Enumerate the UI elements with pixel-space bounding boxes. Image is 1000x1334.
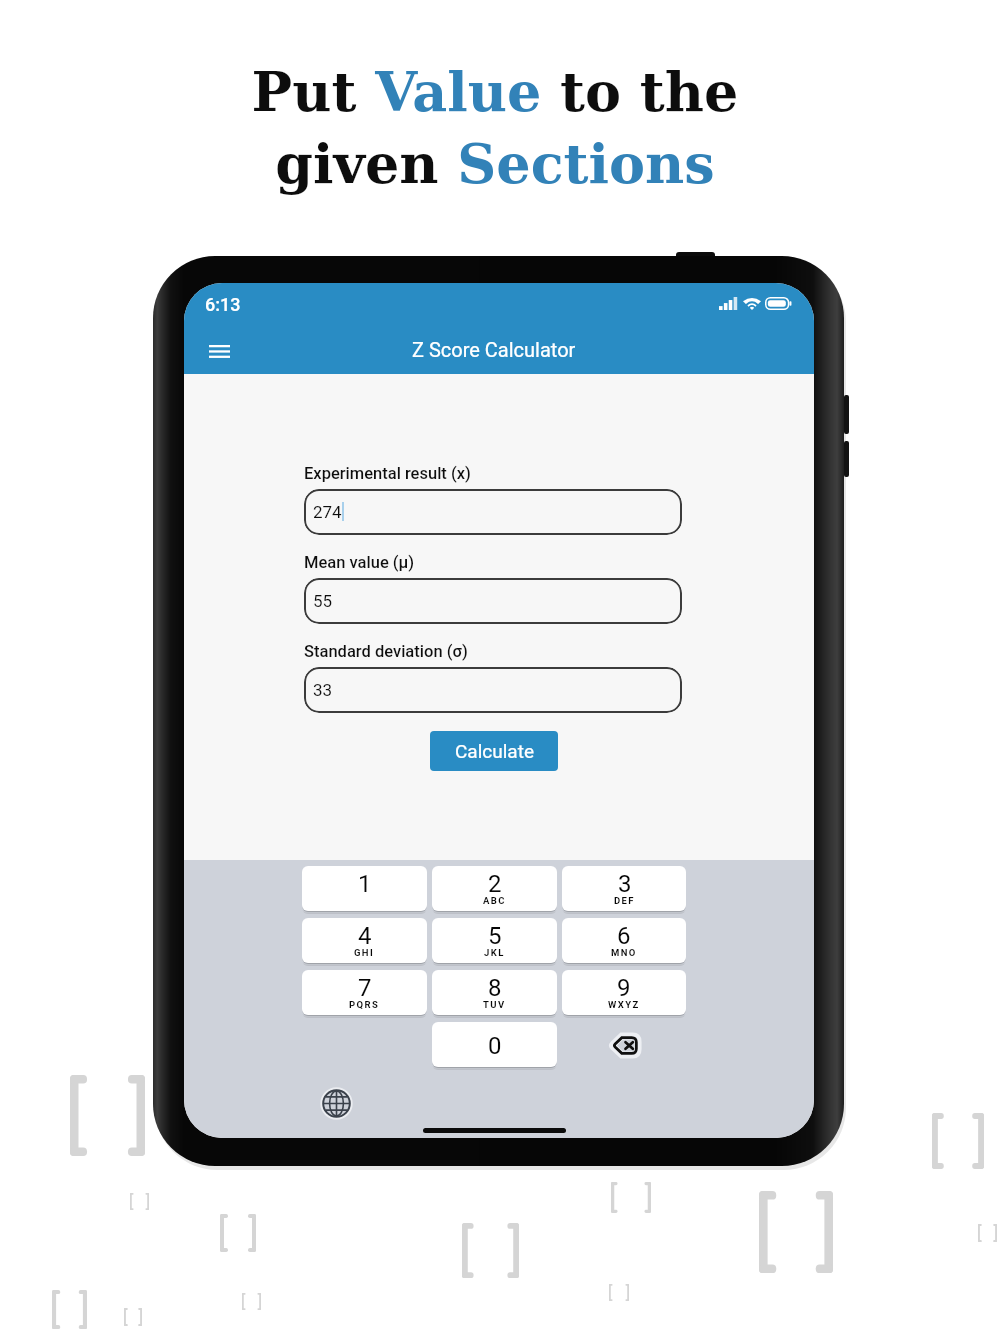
button[interactable]: 4 xyxy=(302,918,427,963)
button[interactable]: 9 xyxy=(562,970,686,1015)
staticText: Standard deviation (σ) xyxy=(304,642,468,661)
button[interactable]: 0 xyxy=(432,1022,557,1067)
staticText: WXYZ xyxy=(608,999,640,1010)
staticText: Calculate xyxy=(455,740,534,762)
staticText: 8 xyxy=(488,974,502,1002)
button[interactable]: Change keyboard language xyxy=(319,1086,353,1120)
staticText: JKL xyxy=(484,947,505,958)
button[interactable]: 8 xyxy=(432,970,557,1015)
staticText: 4 xyxy=(358,922,372,950)
staticText: 6 xyxy=(617,922,631,950)
button[interactable]: 7 xyxy=(302,970,427,1015)
staticText: 9 xyxy=(617,974,631,1002)
button[interactable]: 2 xyxy=(432,866,557,911)
staticText: MNO xyxy=(611,947,637,958)
staticText: 2 xyxy=(488,870,502,898)
button[interactable]: Backspace xyxy=(602,1028,648,1062)
button[interactable]: Open navigation menu xyxy=(200,335,238,367)
staticText: 55 xyxy=(313,591,333,611)
staticText: 7 xyxy=(358,974,372,1002)
staticText: ABC xyxy=(483,895,506,906)
staticText: DEF xyxy=(614,895,635,906)
staticText: 1 xyxy=(358,870,372,898)
staticText: 5 xyxy=(488,922,502,950)
staticText: Mean value (μ) xyxy=(304,553,415,572)
staticText: Put Value to the given Sections xyxy=(0,60,995,195)
staticText: Experimental result (x) xyxy=(304,464,471,483)
button[interactable]: 33 xyxy=(304,667,682,713)
button[interactable]: 6 xyxy=(562,918,686,963)
button[interactable]: 1 xyxy=(302,866,427,911)
staticText: 0 xyxy=(488,1032,502,1060)
staticText: 274 xyxy=(313,502,342,522)
staticText: GHI xyxy=(354,947,375,958)
button[interactable]: 55 xyxy=(304,578,682,624)
button[interactable]: 3 xyxy=(562,866,686,911)
button[interactable]: Calculate xyxy=(430,731,558,771)
button[interactable]: 274 xyxy=(304,489,682,535)
staticText: 6:13 xyxy=(205,294,241,315)
staticText: 33 xyxy=(313,680,333,700)
staticText: Z Score Calculator xyxy=(412,338,576,361)
button[interactable]: 5 xyxy=(432,918,557,963)
staticText: 3 xyxy=(618,870,632,898)
staticText: TUV xyxy=(483,999,506,1010)
staticText: PQRS xyxy=(349,999,380,1010)
